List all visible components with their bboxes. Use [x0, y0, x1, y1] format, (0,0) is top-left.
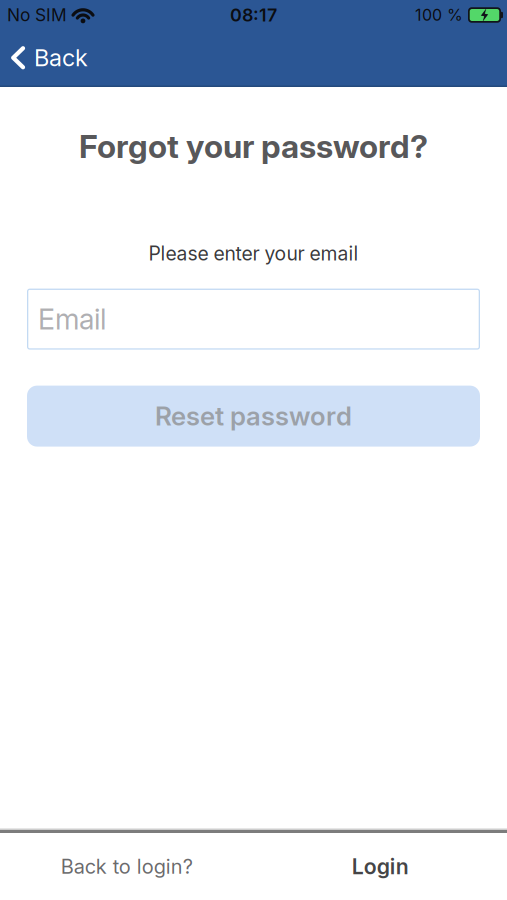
button[interactable]: Email — [27, 289, 480, 350]
button[interactable]: Reset password — [27, 386, 480, 447]
staticText: 100 % — [415, 5, 463, 25]
staticText: 08:17 — [230, 4, 277, 26]
button[interactable]: Back — [0, 44, 88, 72]
staticText: Reset password — [155, 400, 352, 432]
staticText: No SIM — [7, 4, 67, 25]
staticText: Email — [38, 302, 106, 336]
button[interactable]: Login — [253, 854, 507, 879]
staticText: Please enter your email — [148, 242, 358, 265]
staticText: Forgot your password? — [79, 127, 428, 166]
staticText: Login — [352, 854, 409, 879]
button[interactable]: Back to login? — [0, 854, 253, 879]
staticText: Back to login? — [61, 854, 193, 879]
staticText: Back — [34, 44, 88, 72]
